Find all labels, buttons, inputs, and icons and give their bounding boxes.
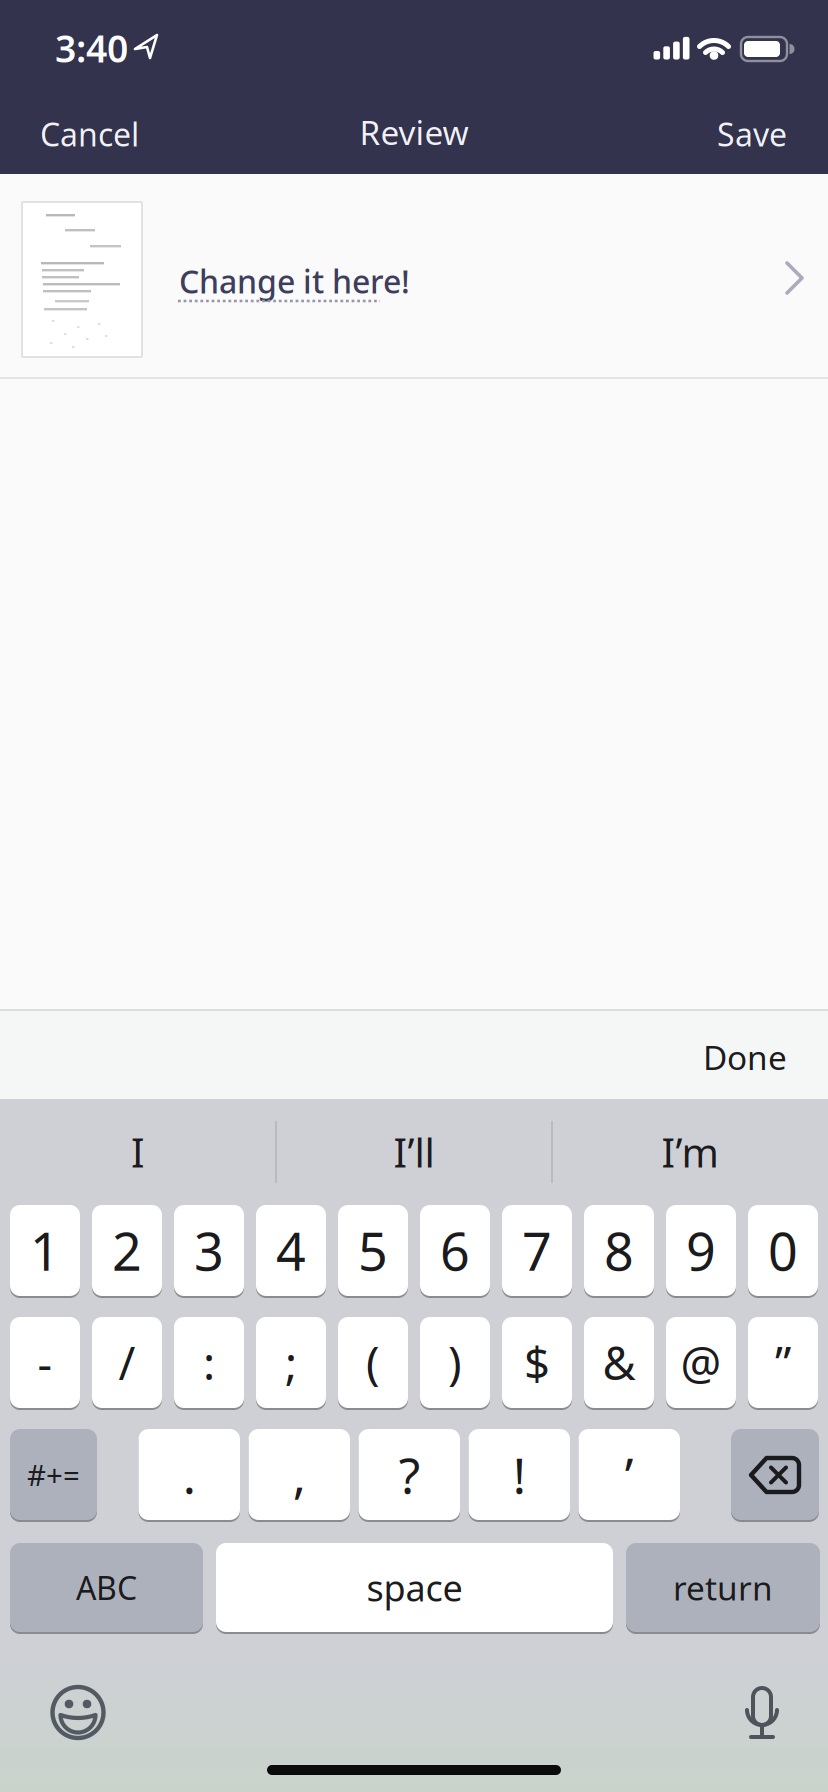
button[interactable]: @: [666, 1317, 736, 1408]
button[interactable]: 9: [666, 1205, 736, 1296]
staticText: 0: [768, 1216, 798, 1285]
staticText: ”: [775, 1332, 791, 1393]
button[interactable]: ABC: [10, 1543, 203, 1632]
button[interactable]: I: [1, 1102, 275, 1202]
staticText: 9: [686, 1216, 716, 1285]
staticText: 6: [440, 1216, 470, 1285]
button[interactable]: I’ll: [277, 1102, 551, 1202]
button[interactable]: ’: [578, 1429, 680, 1520]
button[interactable]: space: [216, 1543, 613, 1632]
staticText: ?: [399, 1442, 420, 1507]
staticText: :: [203, 1332, 215, 1393]
staticText: ABC: [76, 1566, 137, 1609]
button[interactable]: return: [626, 1543, 820, 1632]
button[interactable]: !: [468, 1429, 570, 1520]
button[interactable]: /: [92, 1317, 162, 1408]
staticText: 7: [522, 1216, 552, 1285]
button[interactable]: 0: [748, 1205, 818, 1296]
button[interactable]: -: [10, 1317, 80, 1408]
staticText: ): [448, 1332, 462, 1393]
button[interactable]: Save: [627, 108, 787, 160]
staticText: 2: [112, 1216, 142, 1285]
button[interactable]: ”: [748, 1317, 818, 1408]
staticText: @: [680, 1332, 721, 1393]
staticText: &: [602, 1332, 635, 1393]
button[interactable]: &: [584, 1317, 654, 1408]
staticText: I: [131, 1125, 145, 1178]
staticText: $: [524, 1332, 550, 1393]
staticText: Save: [717, 113, 787, 155]
button[interactable]: ?: [358, 1429, 460, 1520]
button[interactable]: (: [338, 1317, 408, 1408]
staticText: Done: [703, 1035, 787, 1079]
staticText: return: [673, 1565, 773, 1610]
staticText: ;: [285, 1332, 297, 1393]
button[interactable]: 1: [10, 1205, 80, 1296]
staticText: 3:40: [55, 23, 128, 73]
button[interactable]: 8: [584, 1205, 654, 1296]
button[interactable]: 5: [338, 1205, 408, 1296]
staticText: ’: [625, 1442, 634, 1507]
staticText: Cancel: [40, 113, 139, 155]
button[interactable]: Change it here!: [0, 174, 828, 378]
staticText: 1: [30, 1216, 60, 1285]
staticText: -: [37, 1332, 52, 1393]
button[interactable]: :: [174, 1317, 244, 1408]
button[interactable]: ;: [256, 1317, 326, 1408]
staticText: I’m: [661, 1125, 718, 1178]
staticText: I’ll: [393, 1125, 434, 1178]
button[interactable]: 2: [92, 1205, 162, 1296]
button[interactable]: $: [502, 1317, 572, 1408]
button[interactable]: #+=: [10, 1429, 97, 1520]
button[interactable]: I’m: [553, 1102, 827, 1202]
button[interactable]: ): [420, 1317, 490, 1408]
staticText: (: [366, 1332, 380, 1393]
staticText: 4: [276, 1216, 306, 1285]
staticText: ,: [293, 1442, 306, 1507]
button[interactable]: 4: [256, 1205, 326, 1296]
staticText: space: [366, 1564, 462, 1611]
staticText: 3: [194, 1216, 224, 1285]
button[interactable]: 3: [174, 1205, 244, 1296]
staticText: #+=: [27, 1455, 80, 1494]
button[interactable]: Dictation: [740, 1687, 784, 1747]
staticText: .: [183, 1442, 196, 1507]
staticText: !: [513, 1442, 526, 1507]
staticText: Review: [359, 110, 468, 154]
button[interactable]: .: [138, 1429, 240, 1520]
button[interactable]: ,: [248, 1429, 350, 1520]
button[interactable]: Cancel: [40, 108, 200, 160]
button[interactable]: Delete: [731, 1429, 819, 1520]
button[interactable]: 6: [420, 1205, 490, 1296]
staticText: Change it here!: [179, 260, 410, 302]
button[interactable]: 7: [502, 1205, 572, 1296]
button[interactable]: Done: [587, 1027, 787, 1087]
staticText: 5: [358, 1216, 388, 1285]
staticText: 8: [604, 1216, 634, 1285]
staticText: /: [118, 1332, 135, 1393]
button[interactable]: Emoji: [46, 1681, 110, 1745]
